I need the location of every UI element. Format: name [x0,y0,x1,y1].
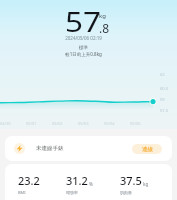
staticText: 05/02 [52,121,63,126]
button[interactable]: 31.2 [66,164,118,200]
button[interactable]: 37.5 [120,164,172,200]
staticText: 連線 [142,146,153,153]
staticText: 05/03 [78,121,89,126]
staticText: 較1日前上升0.8kg [0,51,172,57]
staticText: 62 [160,72,165,77]
staticText: 31.2 [66,173,88,188]
staticText: kg [143,181,149,187]
staticText: 2024/05/06 02:19 [0,35,172,41]
button[interactable]: 連線 [132,144,162,154]
staticText: % [89,181,93,187]
button[interactable]: 未連線手錶 [5,136,172,161]
staticText: 57 [65,2,102,40]
staticText: 05/04 [104,121,115,126]
staticText: 標準 [0,45,172,51]
staticText: 未連線手錶 [36,145,64,152]
staticText: BMI [18,190,26,195]
staticText: 肌肉量 [120,190,132,195]
staticText: 04/30 [0,121,11,126]
button[interactable]: 23.2 [18,164,70,200]
staticText: 體脂率 [66,190,78,195]
staticText: 57.5 [160,108,168,113]
staticText: 23.2 [18,173,40,188]
staticText: 60.5 [160,86,168,91]
staticText: 05/05 [130,121,141,126]
staticText: kg [99,12,106,20]
staticText: 05/01 [26,121,37,126]
staticText: .8 [99,20,110,36]
staticText: 59 [160,97,165,102]
staticText: 37.5 [120,173,142,188]
